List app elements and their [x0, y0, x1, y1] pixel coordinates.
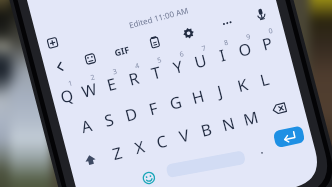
button[interactable]: Phone showing on-screen keyboard — [0, 0, 332, 187]
